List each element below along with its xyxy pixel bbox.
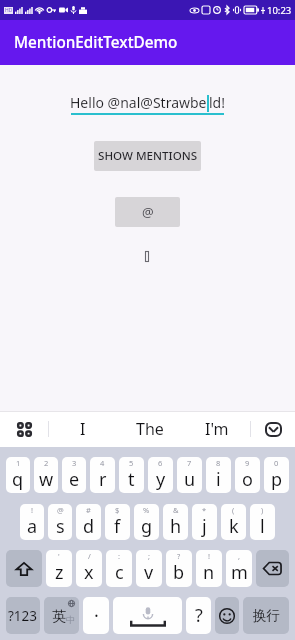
button[interactable]: 8: [206, 457, 231, 493]
button[interactable]: %: [134, 504, 159, 540]
button[interactable]: Collapse keyboard: [251, 411, 295, 447]
button[interactable]: del: [256, 550, 289, 587]
staticText: d: [83, 514, 95, 539]
button[interactable]: 换行: [243, 597, 289, 634]
staticText: e: [69, 467, 80, 492]
staticText: 10:23: [267, 4, 292, 17]
button[interactable]: 7: [177, 457, 202, 493]
staticText: n: [203, 560, 215, 585]
button[interactable]: /: [76, 550, 102, 587]
staticText: t: [128, 467, 135, 492]
staticText: m: [231, 560, 248, 585]
button[interactable]: 4: [90, 457, 115, 493]
button[interactable]: !: [20, 504, 44, 540]
staticText: a: [27, 514, 38, 539]
staticText: ,: [238, 551, 241, 561]
staticText: %: [143, 505, 150, 515]
staticText: 3: [72, 458, 77, 468]
staticText: z: [55, 560, 64, 585]
button[interactable]: SHOW MENTIONS: [94, 141, 201, 171]
staticText: The: [136, 418, 164, 440]
button[interactable]: I: [49, 411, 116, 447]
button[interactable]: Keyboard toolbar: [0, 411, 48, 447]
staticText: HD: [5, 7, 13, 14]
staticText: 9: [245, 458, 250, 468]
staticText: !: [208, 551, 211, 561]
button[interactable]: The: [116, 411, 183, 447]
staticText: @: [142, 203, 154, 221]
staticText: 2: [44, 458, 49, 468]
button[interactable]: 1: [6, 457, 30, 493]
button[interactable]: ): [250, 504, 275, 540]
button[interactable]: ;: [136, 550, 162, 587]
staticText: i: [216, 467, 221, 492]
staticText: 英: [52, 608, 66, 626]
staticText: 5: [129, 458, 134, 468]
staticText: j: [202, 514, 207, 539]
staticText: ': [58, 551, 60, 561]
button[interactable]: (: [221, 504, 246, 540]
staticText: *: [202, 505, 207, 515]
button[interactable]: 5: [119, 457, 144, 493]
staticText: ;: [148, 551, 151, 561]
button[interactable]: :: [106, 550, 132, 587]
staticText: @: [57, 505, 64, 515]
staticText: MentionEditTextDemo: [14, 32, 178, 53]
staticText: ?: [177, 551, 181, 561]
staticText: (: [232, 505, 235, 515]
button[interactable]: space: [113, 597, 182, 634]
staticText: !: [31, 505, 34, 515]
staticText: Hello @nal@Strawbe: [70, 93, 207, 112]
staticText: h: [170, 514, 182, 539]
staticText: 换行: [253, 607, 280, 624]
button[interactable]: 2: [34, 457, 58, 493]
button[interactable]: emoji: [215, 597, 239, 634]
staticText: SHOW MENTIONS: [98, 148, 198, 164]
staticText: s: [56, 514, 65, 539]
staticText: c: [115, 560, 124, 585]
staticText: k: [229, 514, 239, 539]
staticText: ld!: [209, 93, 225, 112]
staticText: r: [99, 467, 107, 492]
button[interactable]: 6: [148, 457, 173, 493]
staticText: 中: [66, 614, 75, 625]
staticText: p: [271, 467, 283, 492]
staticText: 1: [16, 458, 21, 468]
staticText: q: [12, 467, 24, 492]
staticText: v: [144, 560, 154, 585]
staticText: y: [156, 467, 166, 492]
button[interactable]: *: [192, 504, 217, 540]
button[interactable]: @: [115, 197, 180, 227]
staticText: #: [86, 505, 91, 515]
button[interactable]: ?: [166, 550, 192, 587]
staticText: 8: [216, 458, 221, 468]
button[interactable]: 0: [264, 457, 289, 493]
staticText: x: [84, 560, 94, 585]
button[interactable]: lang: [44, 597, 79, 634]
staticText: 0: [274, 458, 279, 468]
staticText: f: [114, 514, 121, 539]
staticText: ?123: [8, 607, 38, 625]
button[interactable]: I'm: [183, 411, 250, 447]
button[interactable]: &: [163, 504, 188, 540]
staticText: ·: [94, 603, 99, 628]
button[interactable]: $: [105, 504, 130, 540]
staticText: w: [39, 467, 54, 492]
staticText: &: [173, 505, 179, 515]
button[interactable]: ': [46, 550, 72, 587]
button[interactable]: ?: [186, 597, 211, 634]
button[interactable]: @: [48, 504, 72, 540]
button[interactable]: #: [76, 504, 101, 540]
staticText: I: [80, 418, 86, 440]
staticText: l: [260, 514, 265, 539]
button[interactable]: 3: [62, 457, 86, 493]
button[interactable]: !: [196, 550, 222, 587]
button[interactable]: ·: [83, 597, 109, 634]
button[interactable]: ?123: [6, 597, 40, 634]
button[interactable]: 9: [235, 457, 260, 493]
button[interactable]: ,: [226, 550, 252, 587]
staticText: 7: [187, 458, 192, 468]
button[interactable]: shift: [6, 550, 42, 587]
staticText: ): [261, 505, 264, 515]
staticText: g: [141, 514, 153, 539]
